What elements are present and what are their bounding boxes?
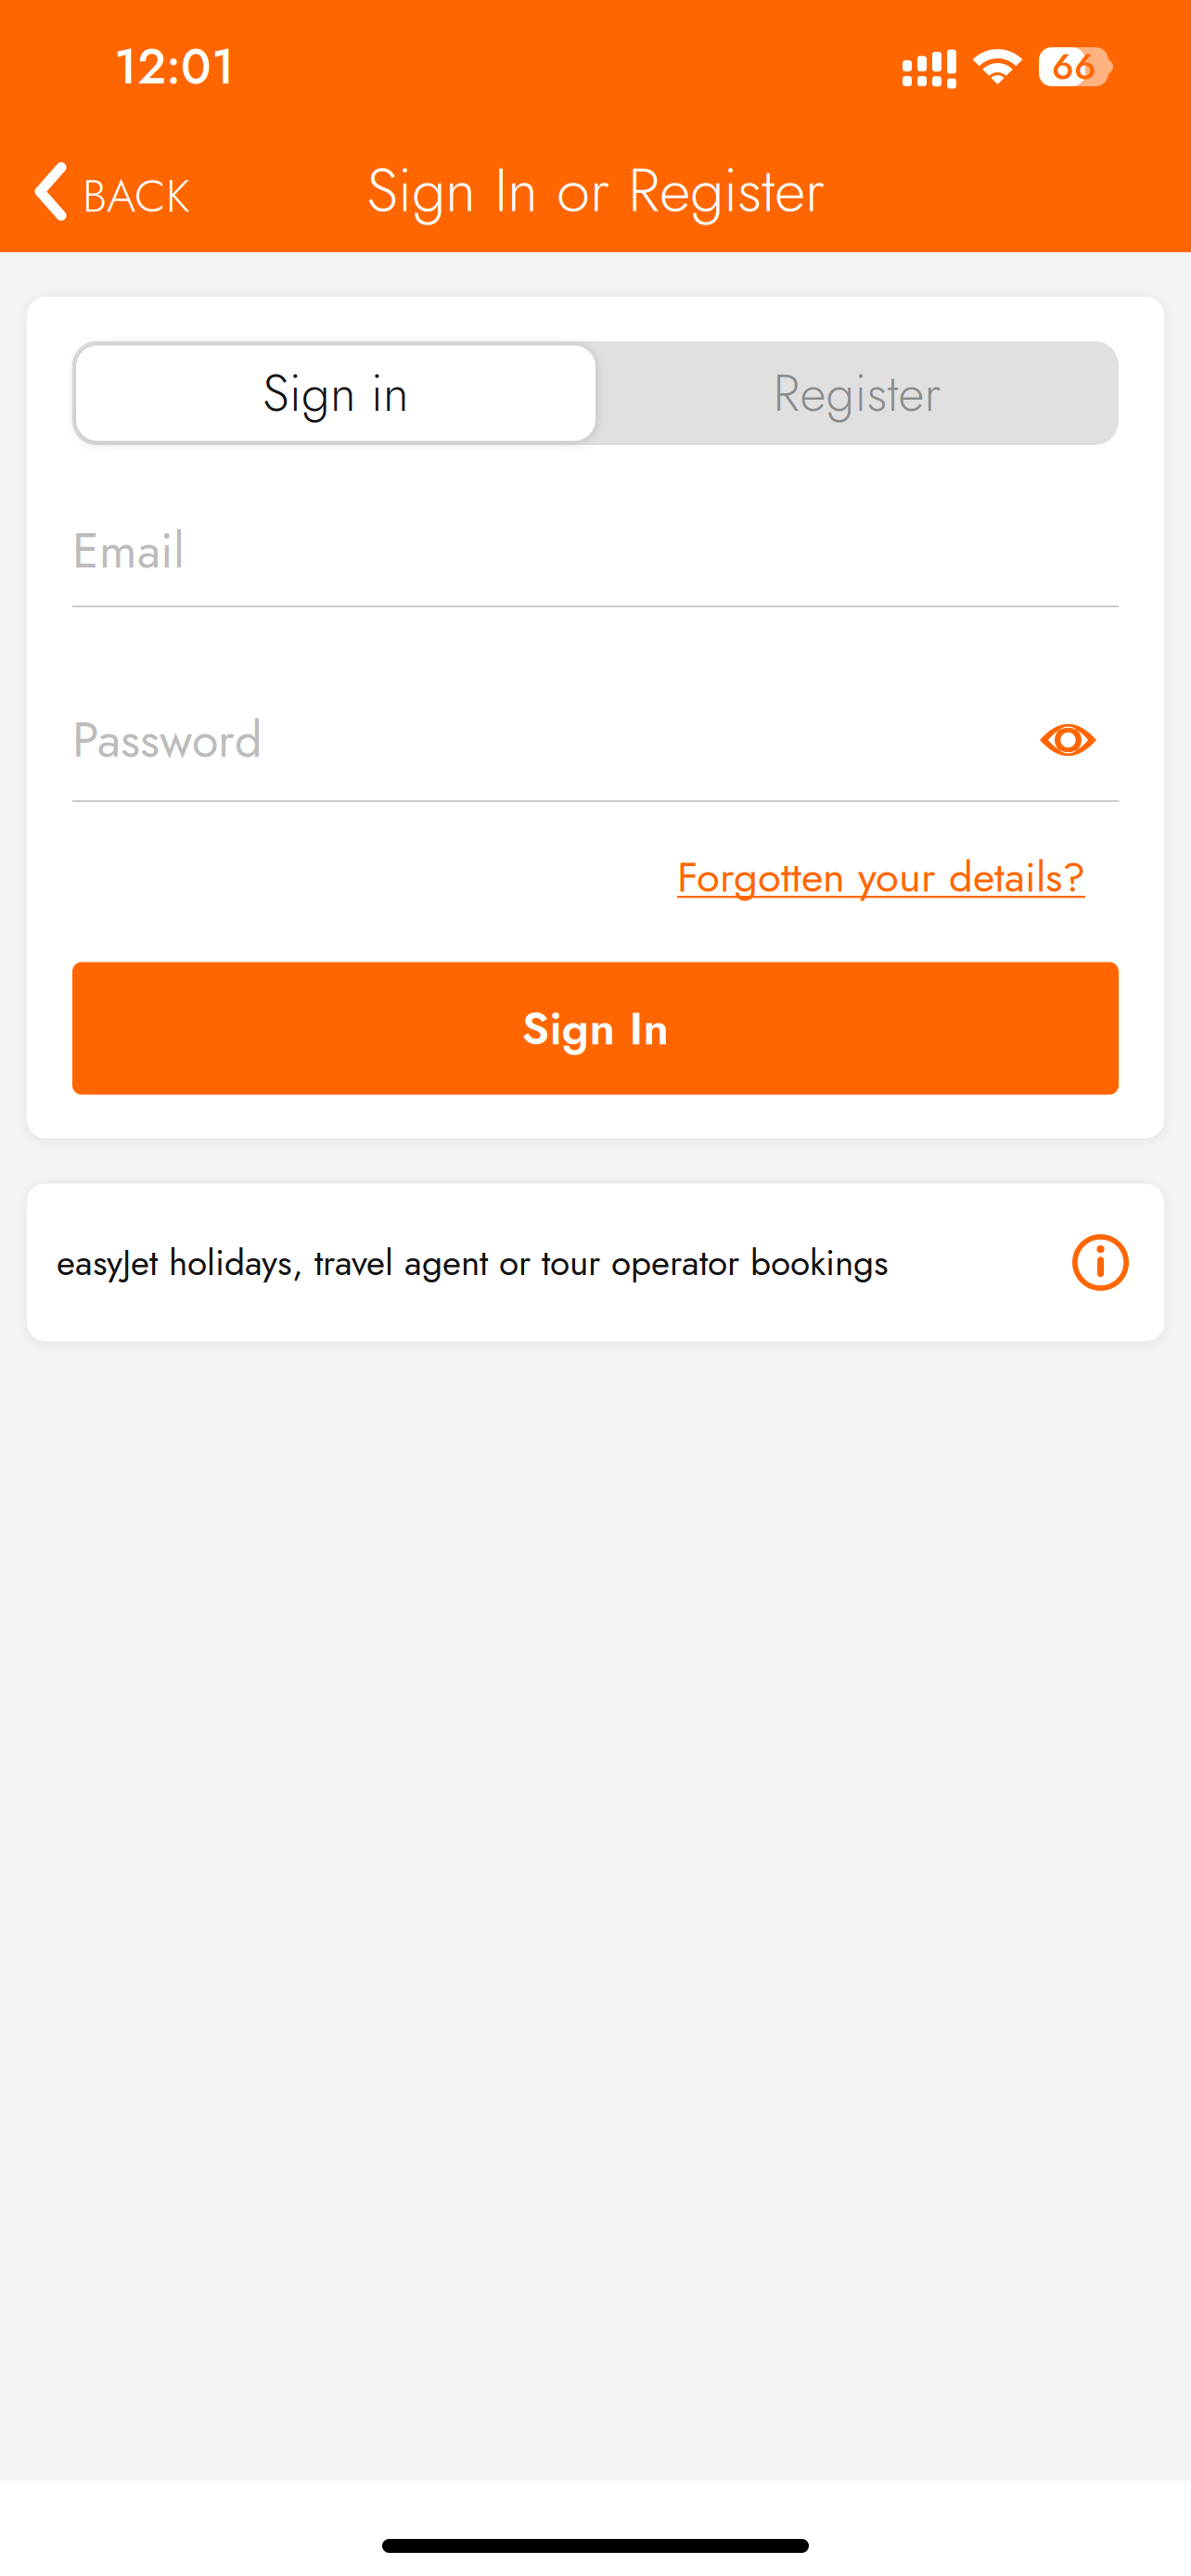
button[interactable]: Sign In [72, 962, 1119, 1095]
button[interactable]: Forgotten your details? [677, 837, 1119, 917]
staticText: 66 [1052, 41, 1096, 93]
staticText: easyJet holidays, travel agent or tour o… [57, 1237, 889, 1288]
staticText: Email [72, 516, 185, 586]
staticText: Register [773, 357, 941, 430]
staticText: Sign in [263, 357, 409, 430]
button[interactable]: Sign in [72, 342, 595, 445]
staticText: Password [72, 705, 263, 775]
button[interactable]: BACK [0, 138, 216, 242]
staticText: BACK [83, 163, 190, 229]
button[interactable]: Show password [1003, 712, 1119, 768]
staticText: Sign In [522, 995, 669, 1061]
button[interactable]: easyJet holidays, travel agent or tour o… [27, 1184, 1164, 1341]
button[interactable]: Register [595, 341, 1119, 445]
staticText: 12:01 [114, 32, 235, 102]
staticText: Forgotten your details? [677, 847, 1085, 907]
staticText: Sign In or Register [366, 146, 825, 234]
